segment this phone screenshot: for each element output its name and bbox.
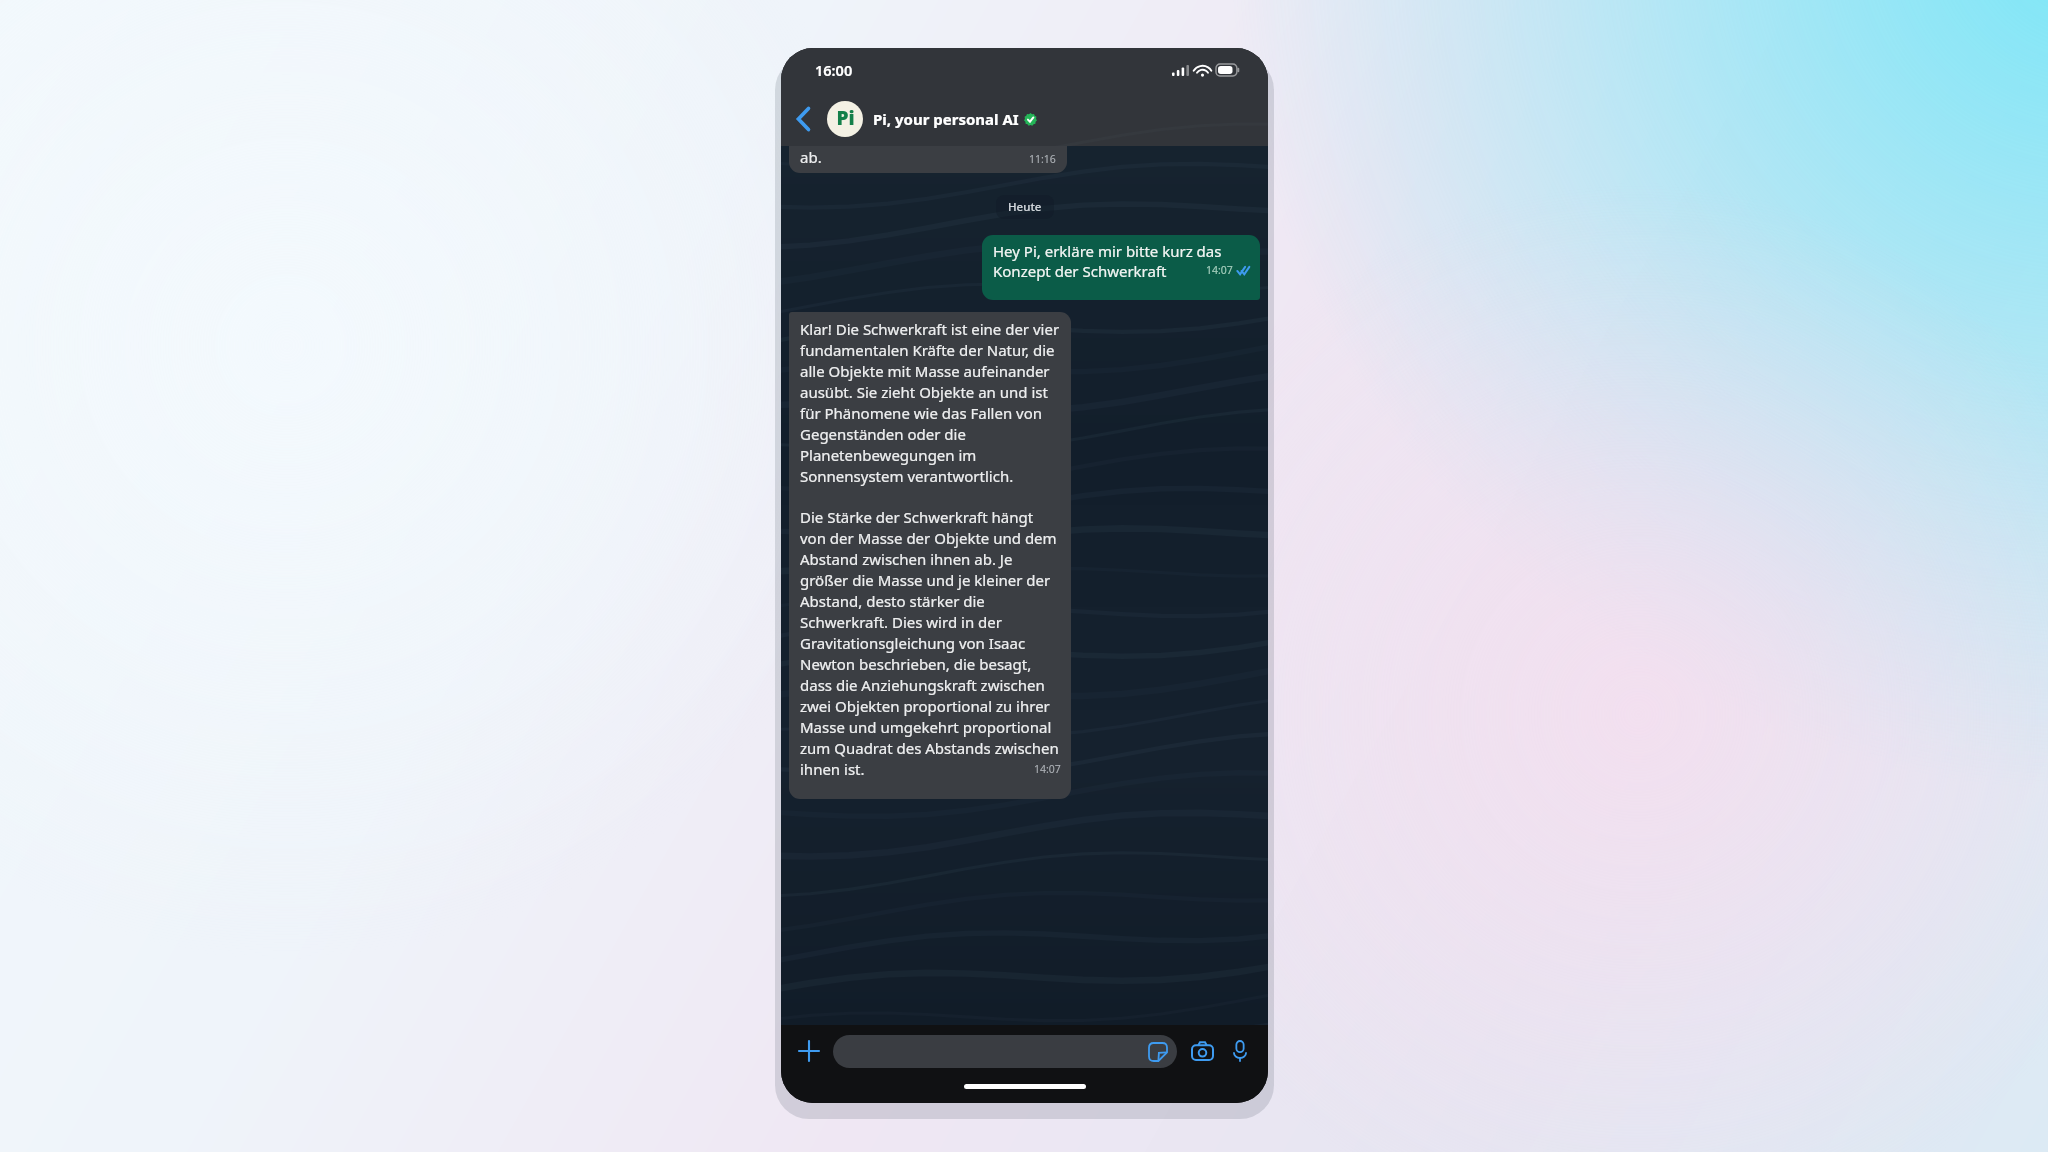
button[interactable]: Klar! Die Schwerkraft ist eine der vier …	[789, 312, 1071, 799]
button[interactable]: Back	[781, 92, 827, 146]
button[interactable]: ab.	[789, 146, 1067, 173]
button[interactable]: Pi	[827, 92, 1222, 146]
button[interactable]: Attach	[794, 1036, 824, 1066]
button[interactable]: Hey Pi, erkläre mir bitte kurz das Konze…	[982, 235, 1260, 300]
staticText: 14:07	[1206, 263, 1233, 277]
staticText: 11:16	[1029, 152, 1056, 166]
button[interactable]: Camera	[1187, 1036, 1217, 1066]
button[interactable]: Voice message	[1225, 1036, 1255, 1066]
staticText: Pi	[836, 105, 855, 131]
staticText: Hey Pi, erkläre mir bitte kurz das Konze…	[993, 241, 1251, 281]
staticText: Pi, your personal AI	[873, 109, 1019, 129]
staticText: Klar! Die Schwerkraft ist eine der vier …	[800, 319, 1061, 487]
staticText: 14:07	[1034, 762, 1061, 776]
staticText: Die Stärke der Schwerkraft hängt von der…	[800, 507, 1061, 780]
button[interactable]: Stickers	[1143, 1037, 1173, 1067]
staticText: ab.	[800, 147, 1021, 167]
staticText: Heute	[1008, 199, 1042, 215]
button[interactable]: Stickers	[833, 1035, 1177, 1068]
staticText: 16:00	[815, 60, 853, 80]
